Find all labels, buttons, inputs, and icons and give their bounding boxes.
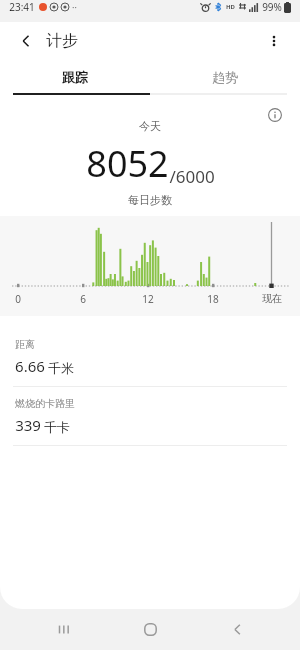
staticText: ·· bbox=[72, 1, 77, 13]
staticText: 每日步数 bbox=[128, 193, 172, 207]
staticText: 今天 bbox=[139, 119, 161, 133]
staticText: 6.66 bbox=[15, 356, 45, 376]
staticText: 8052 bbox=[86, 139, 169, 188]
staticText: 距离 bbox=[15, 338, 35, 351]
staticText: 燃烧的卡路里 bbox=[15, 397, 75, 410]
staticText: 趋势 bbox=[212, 69, 238, 85]
staticText: 339 bbox=[15, 415, 41, 435]
staticText: 18 bbox=[207, 292, 219, 306]
button[interactable]: 跟踪 bbox=[0, 60, 150, 93]
staticText: 现在 bbox=[262, 292, 282, 305]
button[interactable]: 趋势 bbox=[150, 60, 300, 93]
button[interactable]: Recents bbox=[41, 609, 87, 650]
staticText: HD bbox=[226, 3, 235, 11]
button[interactable]: Home bbox=[127, 609, 173, 650]
button[interactable]: Back bbox=[214, 609, 260, 650]
staticText: 千卡 bbox=[44, 419, 70, 435]
staticText: 千米 bbox=[48, 360, 74, 376]
staticText: 计步 bbox=[46, 31, 78, 51]
staticText: 6 bbox=[80, 292, 86, 306]
staticText: 跟踪 bbox=[62, 69, 88, 85]
button[interactable]: More options bbox=[260, 27, 288, 55]
staticText: 99% bbox=[262, 0, 282, 14]
staticText: 0 bbox=[15, 292, 21, 306]
button[interactable]: Back bbox=[12, 27, 40, 55]
staticText: 12 bbox=[142, 292, 154, 306]
staticText: 23:41 bbox=[9, 0, 35, 14]
button[interactable]: Info bbox=[263, 103, 287, 127]
staticText: /6000 bbox=[169, 165, 215, 188]
